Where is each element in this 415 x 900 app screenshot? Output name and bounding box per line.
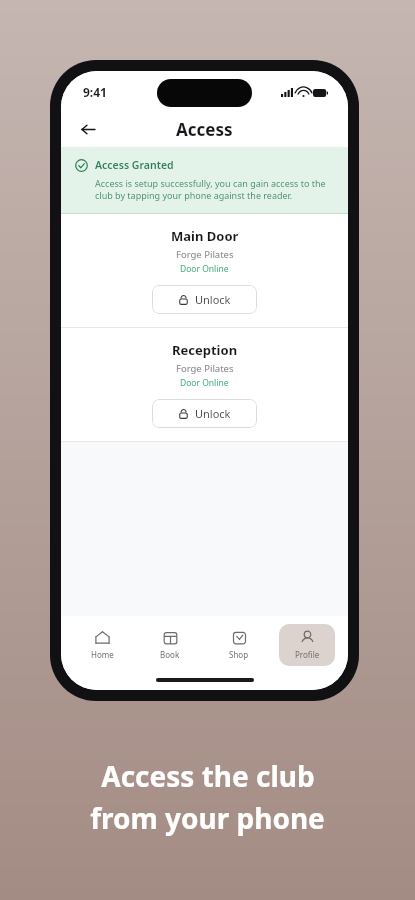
button[interactable]: Back <box>71 112 105 146</box>
staticText: Forge Pilates <box>176 362 234 375</box>
staticText: Access Granted <box>95 158 174 172</box>
staticText: Home <box>91 649 114 660</box>
button[interactable]: Profile <box>279 624 335 666</box>
staticText: Access is setup successfully, you can ga… <box>95 177 328 202</box>
staticText: Access <box>176 118 233 141</box>
button[interactable]: Unlock <box>152 399 257 428</box>
button[interactable]: Shop <box>211 624 267 666</box>
staticText: Profile <box>295 649 320 660</box>
button[interactable]: Book <box>142 624 198 666</box>
button[interactable]: Home <box>74 624 130 666</box>
staticText: Unlock <box>195 406 231 421</box>
staticText: Door Online <box>180 377 229 389</box>
staticText: Reception <box>172 341 238 359</box>
staticText: Main Door <box>171 227 239 245</box>
staticText: Shop <box>229 649 249 660</box>
staticText: 9:41 <box>83 84 107 100</box>
button[interactable]: Unlock <box>152 285 257 314</box>
staticText: Forge Pilates <box>176 248 234 261</box>
staticText: Book <box>160 649 180 660</box>
staticText: Door Online <box>180 263 229 275</box>
staticText: Unlock <box>195 292 231 307</box>
staticText: Access the club <box>101 757 315 795</box>
staticText: from your phone <box>90 799 325 837</box>
